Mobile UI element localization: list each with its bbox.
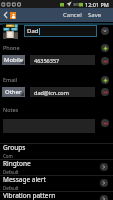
button[interactable]: Remove note [101,119,109,127]
button[interactable]: Cancel [61,8,84,22]
staticText: Default [3,169,19,175]
staticText: 12:01 PM [85,1,109,8]
staticText: Dad [27,27,39,35]
button[interactable]: Remove phone [101,57,109,65]
staticText: Email [3,76,18,83]
staticText: Save [88,11,102,19]
staticText: Message alert [3,175,46,184]
staticText: Com [3,153,13,159]
button[interactable]: 46356357 [30,55,95,65]
button[interactable]: Dad [24,25,97,37]
staticText: Other [5,88,22,96]
button[interactable]: Groups [0,143,113,159]
button[interactable]: Mobile [2,55,25,65]
button[interactable]: Ringtone [0,159,113,175]
button[interactable]: Vibration pattern [0,191,113,200]
staticText: Vibration pattern [3,191,56,200]
button[interactable]: Contact photo [3,24,18,39]
button[interactable]: Save [86,8,104,22]
button[interactable]: Add phone [101,44,109,52]
staticText: Ringtone [3,159,31,168]
button[interactable]: Other [2,87,25,97]
staticText: Default [3,185,19,191]
button[interactable]: Back [0,8,10,22]
button[interactable]: Remove email [101,88,109,96]
staticText: dad@icn.com [34,89,69,96]
staticText: Notes [3,106,19,113]
button[interactable]: dad@icn.com [30,87,95,97]
staticText: 36% [73,2,81,7]
staticText: Cancel [63,11,82,19]
staticText: Mobile [4,56,24,64]
button[interactable]: Add email [101,76,109,84]
button[interactable]: Contacts [10,12,16,19]
staticText: 46356357 [34,57,60,64]
staticText: Groups [3,143,26,152]
button[interactable]: Message alert [0,175,113,191]
button[interactable]: Expand name [101,27,109,35]
staticText: Phone [3,44,20,51]
